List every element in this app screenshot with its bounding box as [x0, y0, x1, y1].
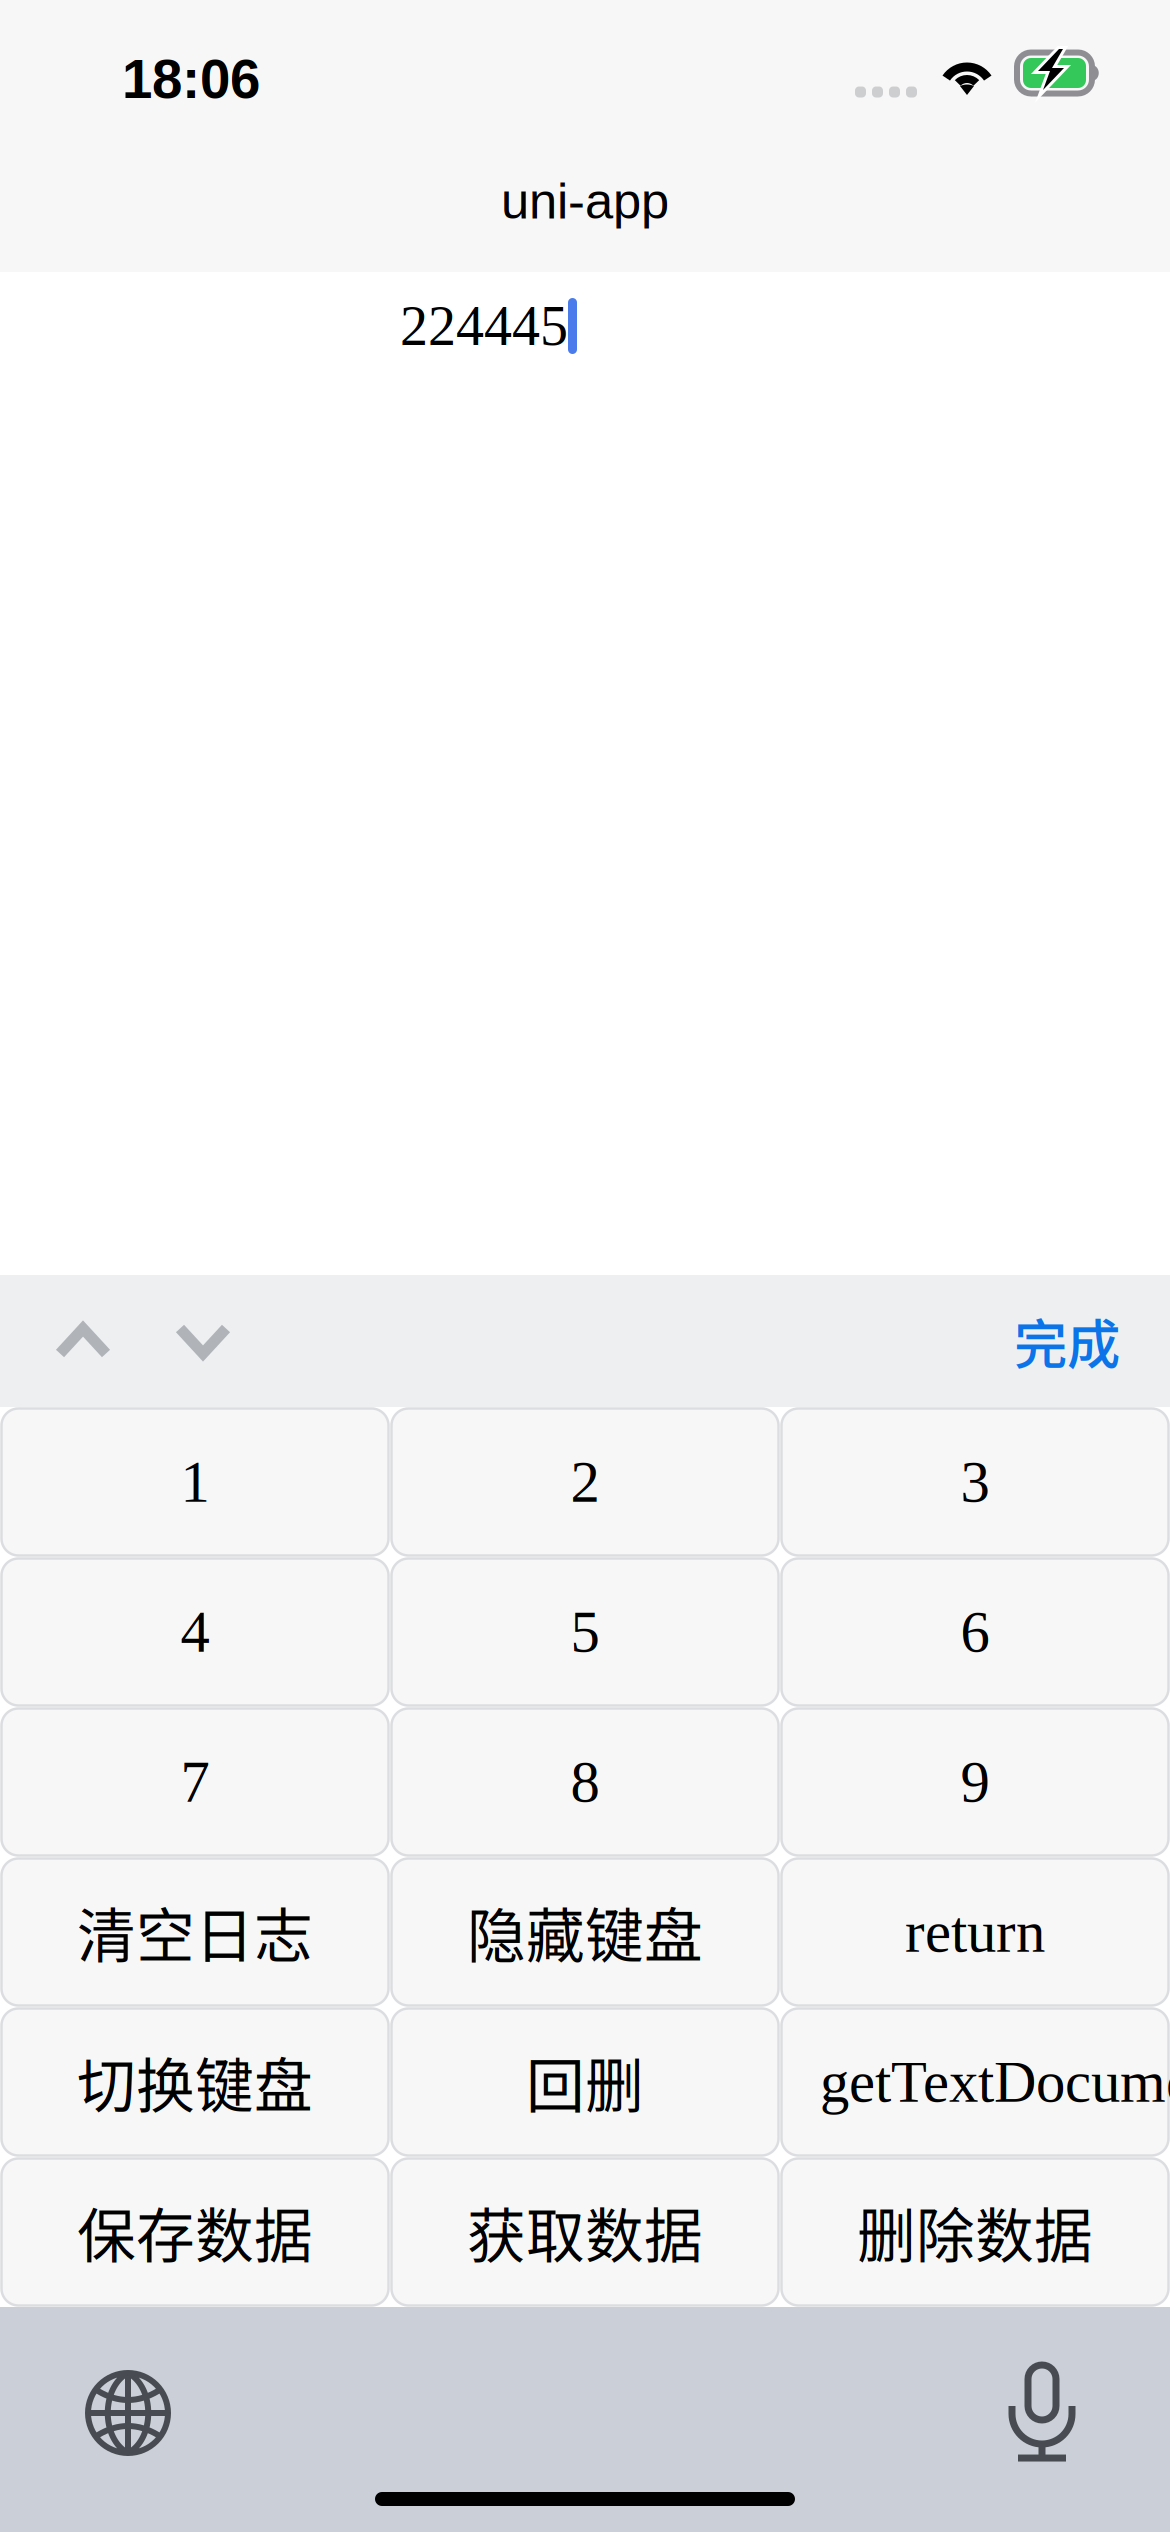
staticText: 切换键盘 [77, 2039, 313, 2124]
button[interactable]: 回删 [390, 2007, 780, 2157]
button[interactable]: 2 [390, 1407, 780, 1557]
button[interactable]: 隐藏键盘 [390, 1857, 780, 2007]
button[interactable]: 1 [0, 1407, 390, 1557]
button[interactable]: 7 [0, 1707, 390, 1857]
staticText: 6 [960, 1599, 989, 1664]
staticText: 224445 [400, 295, 568, 357]
staticText: 4 [180, 1599, 209, 1664]
staticText: 7 [180, 1749, 209, 1814]
staticText: return [905, 1899, 1045, 1964]
button[interactable]: 完成 [964, 1275, 1170, 1407]
button[interactable]: 切换键盘 [0, 2007, 390, 2157]
button[interactable]: getTextDocumentProxy [780, 2007, 1170, 2157]
staticText: uni-app [501, 173, 669, 229]
button[interactable]: 6 [780, 1557, 1170, 1707]
staticText: 清空日志 [77, 1889, 313, 1974]
button[interactable]: 删除数据 [780, 2157, 1170, 2307]
staticText: 18:06 [122, 48, 260, 110]
button[interactable]: 保存数据 [0, 2157, 390, 2307]
staticText: 获取数据 [467, 2189, 703, 2274]
button[interactable]: Next field [138, 1275, 258, 1407]
button[interactable]: 获取数据 [390, 2157, 780, 2307]
button[interactable]: 9 [780, 1707, 1170, 1857]
staticText: 3 [960, 1449, 989, 1514]
staticText: 8 [570, 1749, 599, 1814]
button[interactable]: Dictation [957, 2360, 1127, 2466]
staticText: 隐藏键盘 [467, 1889, 703, 1974]
staticText: 2 [570, 1449, 599, 1514]
staticText: 保存数据 [77, 2189, 313, 2274]
button[interactable]: Previous field [0, 1275, 138, 1407]
staticText: 9 [960, 1749, 989, 1814]
staticText: 1 [180, 1449, 209, 1514]
button[interactable]: 4 [0, 1557, 390, 1707]
button[interactable]: 8 [390, 1707, 780, 1857]
staticText: 5 [570, 1599, 599, 1664]
staticText: 完成 [1014, 1302, 1120, 1380]
staticText: getTextDocumentProxy [820, 2049, 1170, 2114]
button[interactable]: return [780, 1857, 1170, 2007]
button[interactable]: 清空日志 [0, 1857, 390, 2007]
button[interactable]: 3 [780, 1407, 1170, 1557]
staticText: 回删 [526, 2039, 644, 2124]
button[interactable]: Next keyboard [43, 2360, 213, 2466]
button[interactable]: 5 [390, 1557, 780, 1707]
staticText: 删除数据 [857, 2189, 1093, 2274]
